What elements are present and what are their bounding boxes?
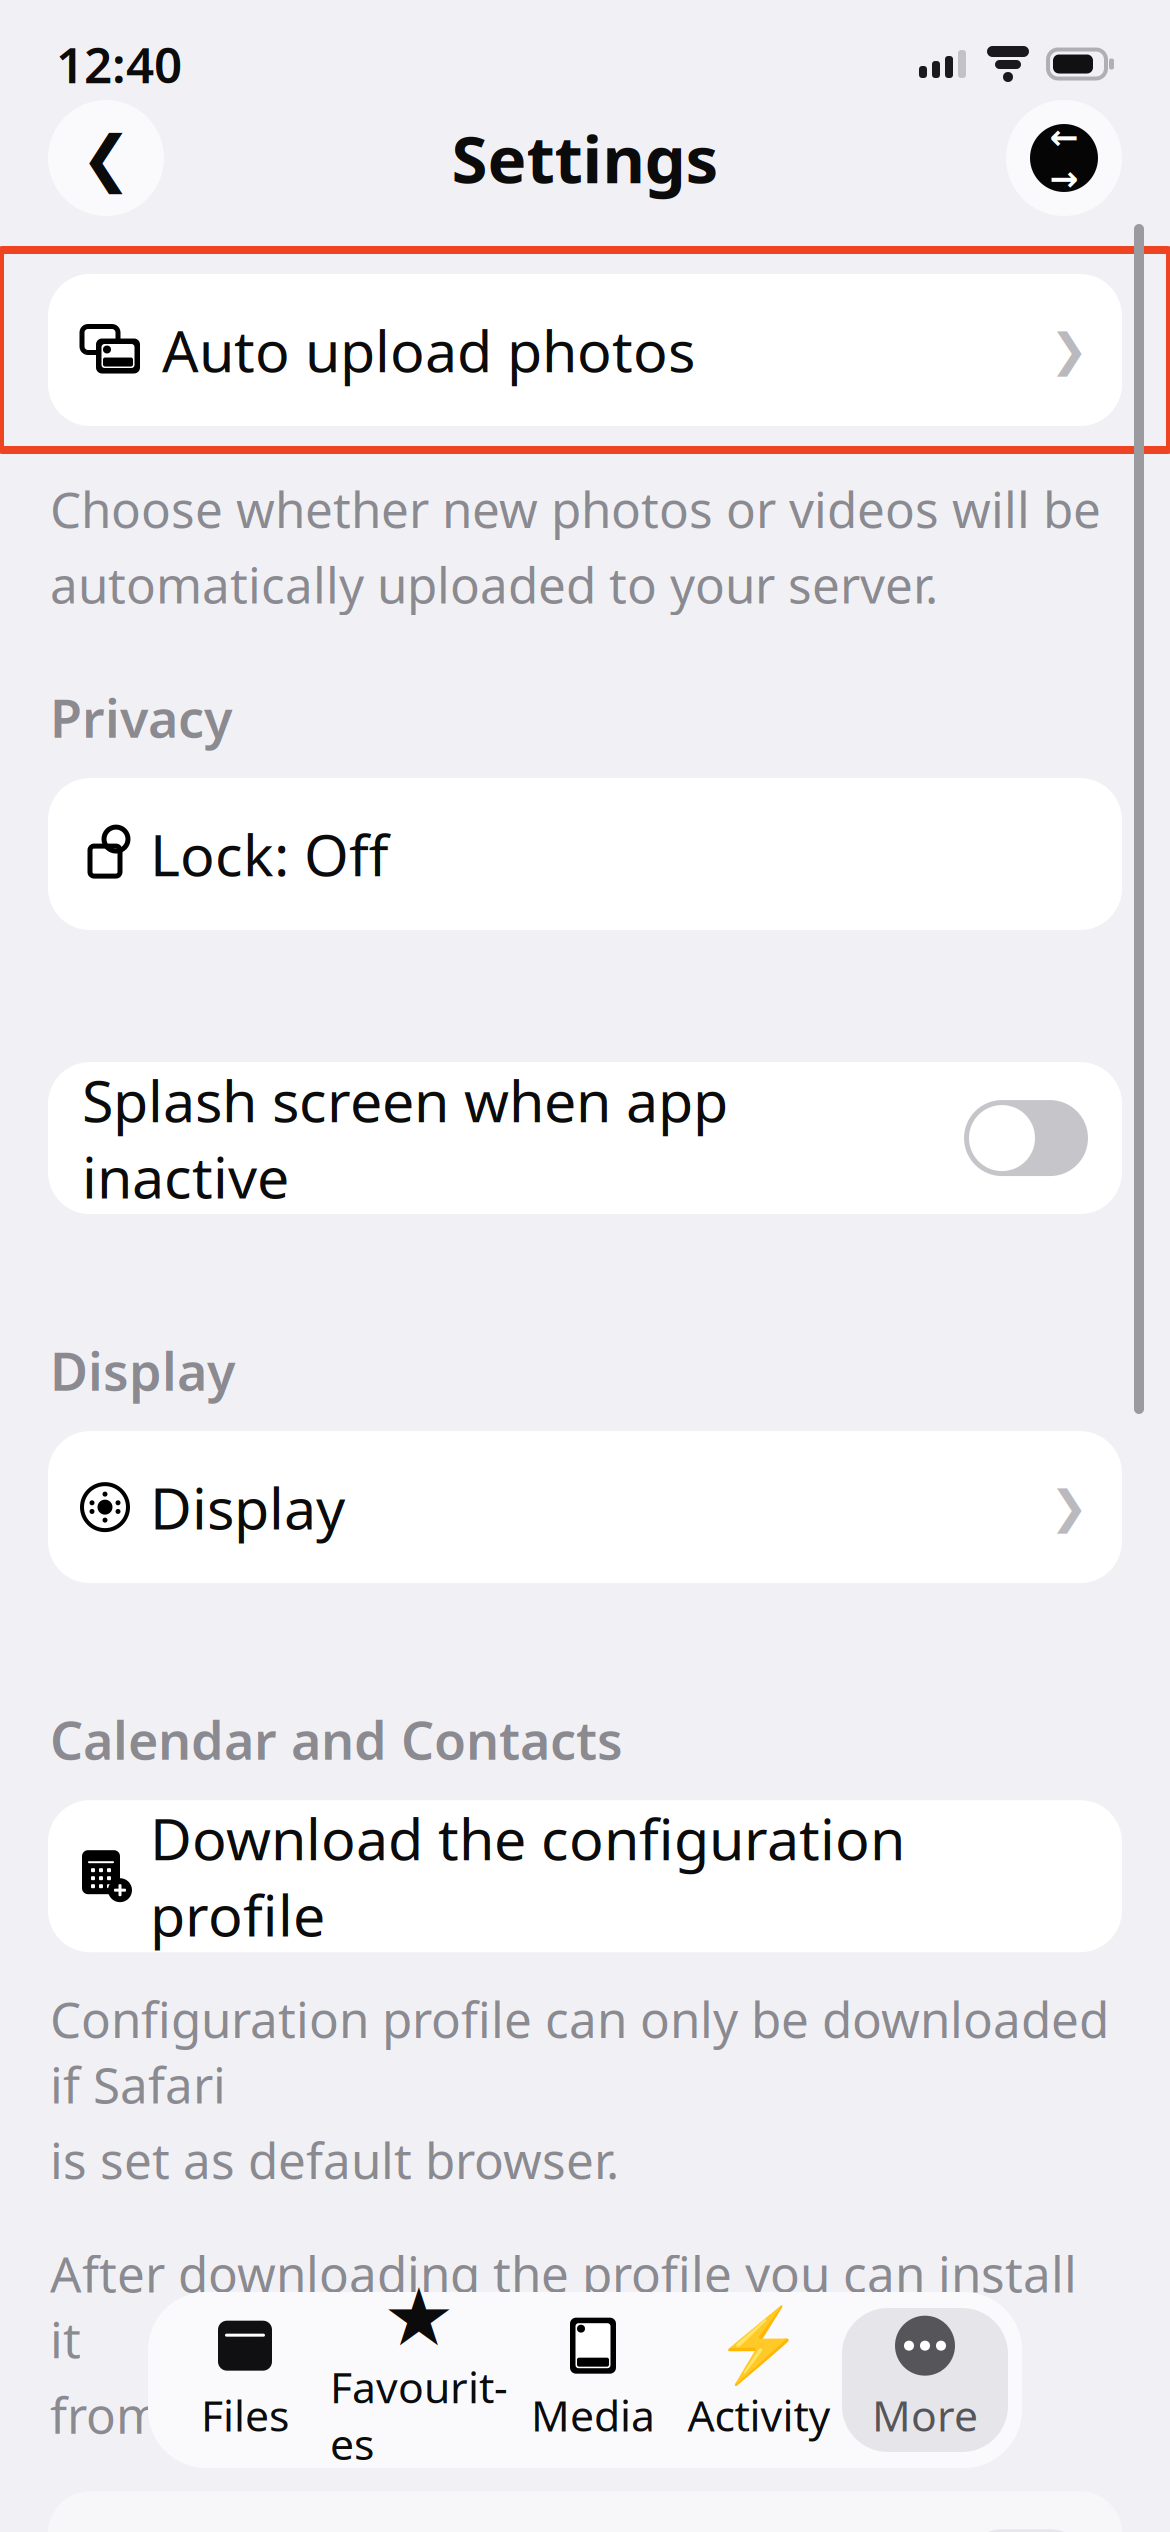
button[interactable]: ⚡ — [676, 2308, 842, 2452]
staticText: is set as default browser. — [50, 2127, 619, 2193]
staticText: Splash screen when app inactive — [82, 1062, 728, 1214]
staticText: from Settings. — [50, 2382, 376, 2447]
staticText: Configuration profile can only be downlo… — [50, 1986, 1109, 2117]
button[interactable]: Display — [48, 1431, 1122, 1583]
staticText: automatically uploaded to your server. — [50, 551, 938, 617]
button[interactable]: Files — [162, 2308, 328, 2452]
button[interactable]: Transfers — [1006, 100, 1122, 216]
button[interactable]: Media — [510, 2308, 676, 2452]
staticText: Display — [50, 1336, 235, 1405]
button[interactable]: ★ — [328, 2308, 510, 2452]
staticText: Settings — [451, 115, 718, 201]
staticText: Calendar and Contacts — [50, 1705, 623, 1774]
staticText: → — [1049, 159, 1078, 198]
staticText: Auto upload photos — [162, 312, 695, 388]
staticText: Download the configuration profile — [150, 1800, 905, 1952]
button[interactable]: Back — [48, 100, 164, 216]
staticText: Lock: Off — [150, 816, 388, 892]
staticText: ★ — [383, 2272, 455, 2363]
staticText: More — [872, 2387, 978, 2443]
staticText: ❮ — [80, 123, 131, 193]
staticText: 12:40 — [56, 31, 182, 97]
staticText: Favourites — [330, 2358, 508, 2472]
staticText: After downloading the profile you can in… — [50, 2241, 1077, 2372]
button[interactable]: Auto upload photos — [48, 274, 1122, 426]
button[interactable]: Splash screen when app inactive — [48, 1062, 1122, 1214]
staticText: Privacy — [50, 683, 232, 752]
staticText: Media — [531, 2387, 655, 2443]
staticText: Files — [201, 2387, 289, 2443]
staticText: ⚡ — [714, 2304, 804, 2387]
staticText: Activity — [687, 2387, 830, 2443]
staticText: ❯ — [1050, 1481, 1088, 1533]
staticText: ← — [1049, 118, 1078, 157]
button[interactable]: More — [842, 2308, 1008, 2452]
staticText: Choose whether new photos or videos will… — [50, 476, 1101, 541]
staticText: ❯ — [1050, 324, 1088, 376]
staticText: Display — [150, 1469, 345, 1545]
button[interactable]: Lock: Off — [48, 778, 1122, 930]
button[interactable]: Download the configuration profile — [48, 1800, 1122, 1952]
